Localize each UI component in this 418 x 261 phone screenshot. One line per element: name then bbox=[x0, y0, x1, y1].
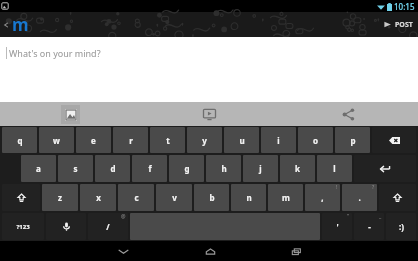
staticText: / bbox=[106, 221, 110, 232]
staticText: ? bbox=[372, 184, 375, 191]
button[interactable]: Voice input bbox=[46, 213, 86, 240]
button[interactable]: k bbox=[280, 155, 315, 182]
button[interactable]: e bbox=[76, 127, 111, 153]
staticText: i bbox=[277, 135, 280, 146]
button[interactable]: What's on your mind? bbox=[0, 37, 418, 102]
button[interactable]: q bbox=[2, 127, 37, 153]
staticText: p bbox=[350, 135, 356, 146]
staticText: ?123 bbox=[16, 223, 30, 231]
button[interactable]: Enter bbox=[354, 155, 416, 182]
button[interactable]: i bbox=[261, 127, 296, 153]
staticText: k bbox=[295, 163, 300, 174]
staticText: , bbox=[321, 192, 324, 203]
button[interactable]: , bbox=[305, 184, 340, 211]
staticText: h bbox=[221, 163, 227, 174]
staticText: b bbox=[209, 192, 215, 203]
staticText: m bbox=[282, 192, 290, 203]
staticText: r bbox=[129, 135, 133, 146]
button[interactable]: b bbox=[194, 184, 229, 211]
button[interactable]: o bbox=[298, 127, 333, 153]
button[interactable]: Shift bbox=[379, 184, 416, 211]
button[interactable]: h bbox=[206, 155, 241, 182]
staticText: . bbox=[358, 192, 361, 203]
staticText: a bbox=[36, 163, 41, 174]
staticText: ' bbox=[336, 221, 339, 232]
staticText: e bbox=[91, 135, 96, 146]
button[interactable]: a bbox=[21, 155, 56, 182]
staticText: POST bbox=[395, 20, 413, 30]
staticText: - bbox=[368, 221, 371, 232]
staticText: f bbox=[148, 163, 152, 174]
staticText: n bbox=[246, 192, 252, 203]
button[interactable]: Attach video bbox=[200, 105, 219, 124]
staticText: y bbox=[202, 135, 207, 146]
staticText: l bbox=[333, 163, 336, 174]
button[interactable]: / bbox=[88, 213, 128, 240]
button[interactable]: r bbox=[113, 127, 148, 153]
staticText: What's on your mind? bbox=[9, 47, 101, 59]
staticText: s bbox=[73, 163, 78, 174]
button[interactable]: POST bbox=[378, 12, 418, 37]
button[interactable]: c bbox=[118, 184, 154, 211]
button[interactable]: Shift bbox=[2, 184, 40, 211]
button[interactable]: j bbox=[243, 155, 278, 182]
staticText: j bbox=[259, 163, 262, 174]
staticText: w bbox=[53, 135, 60, 146]
button[interactable]: u bbox=[224, 127, 259, 153]
staticText: ! bbox=[336, 184, 338, 191]
button[interactable]: w bbox=[39, 127, 74, 153]
button[interactable]: ' bbox=[322, 213, 352, 240]
staticText: 10:15 bbox=[394, 1, 415, 12]
staticText: z bbox=[58, 192, 62, 203]
button[interactable]: s bbox=[58, 155, 93, 182]
staticText: g bbox=[184, 163, 190, 174]
staticText: q bbox=[17, 135, 23, 146]
staticText: u bbox=[239, 135, 245, 146]
button[interactable]: p bbox=[335, 127, 370, 153]
staticText: v bbox=[172, 192, 177, 203]
button[interactable]: t bbox=[150, 127, 185, 153]
button[interactable]: z bbox=[42, 184, 78, 211]
button[interactable]: Recent apps bbox=[253, 241, 339, 261]
staticText: x bbox=[96, 192, 101, 203]
staticText: c bbox=[134, 192, 139, 203]
staticText: o bbox=[313, 135, 318, 146]
button[interactable]: v bbox=[156, 184, 192, 211]
button[interactable]: - bbox=[354, 213, 384, 240]
staticText: :) bbox=[399, 221, 404, 232]
button[interactable]: m bbox=[268, 184, 303, 211]
button[interactable]: Hide keyboard bbox=[80, 241, 167, 261]
button[interactable]: Delete bbox=[372, 127, 416, 153]
staticText: t bbox=[166, 135, 170, 146]
button[interactable]: y bbox=[187, 127, 222, 153]
button[interactable]: ?123 bbox=[2, 213, 44, 240]
button[interactable]: d bbox=[95, 155, 130, 182]
button[interactable]: x bbox=[80, 184, 116, 211]
button[interactable]: l bbox=[317, 155, 352, 182]
button[interactable]: :) bbox=[386, 213, 416, 240]
button[interactable]: g bbox=[169, 155, 204, 182]
button[interactable]: f bbox=[132, 155, 167, 182]
staticText: @ bbox=[121, 213, 126, 220]
staticText: m bbox=[12, 13, 29, 36]
button[interactable]: . bbox=[342, 184, 377, 211]
button[interactable]: Home bbox=[167, 241, 253, 261]
button[interactable]: Share bbox=[339, 105, 358, 124]
staticText: d bbox=[110, 163, 116, 174]
button[interactable]: n bbox=[231, 184, 266, 211]
staticText: _ bbox=[379, 213, 382, 220]
button[interactable]: Attach photo bbox=[61, 105, 80, 124]
staticText: " bbox=[347, 213, 350, 220]
button[interactable]: Navigate up, Mixi bbox=[0, 12, 35, 37]
